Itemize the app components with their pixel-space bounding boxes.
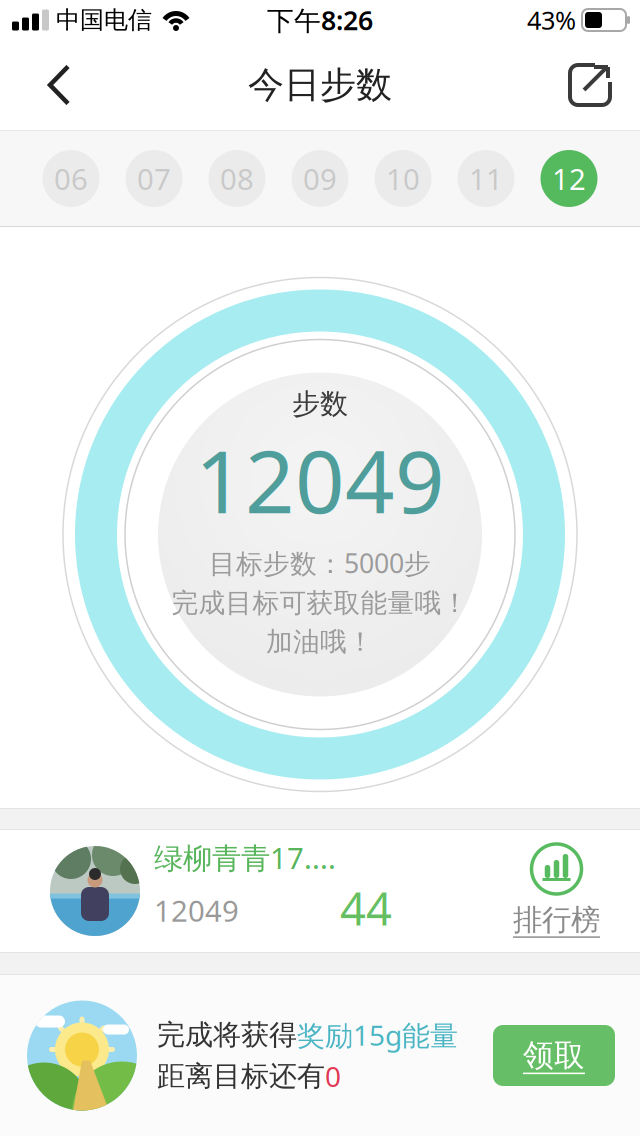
button[interactable]: 09 [291,150,348,207]
staticText: 绿柳青青17.... [154,838,336,877]
staticText: 44 [340,878,392,938]
button[interactable]: Back [0,44,68,125]
staticText: 目标步数：5000步 [209,545,431,581]
staticText: 完成目标可获取能量哦！ [171,587,468,619]
staticText: 12 [552,159,586,198]
button[interactable]: Share [568,47,640,123]
button[interactable]: 12 [540,150,597,207]
staticText: 中国电信 [56,5,152,35]
button[interactable]: 08 [208,150,265,207]
button[interactable]: 排行榜 [513,844,640,938]
staticText: 今日步数 [248,63,392,107]
staticText: 完成将获得 [157,1018,297,1052]
staticText: 下午8:26 [267,2,373,38]
staticText: 加油哦！ [266,625,374,658]
staticText: 10 [386,159,420,198]
staticText: 0 [325,1057,341,1095]
staticText: 12049 [154,891,239,930]
staticText: 06 [54,159,88,198]
staticText: 11 [469,159,503,198]
button[interactable]: 领取 [493,1025,615,1086]
staticText: 43% [527,3,576,37]
button[interactable]: 06 [42,150,99,207]
staticText: 排行榜 [513,902,600,938]
staticText: 领取 [523,1037,585,1074]
staticText: 08 [220,159,254,198]
staticText: 09 [303,159,337,198]
button[interactable]: 07 [125,150,182,207]
staticText: 距离目标还有 [157,1059,325,1093]
staticText: 奖励15g能量 [297,1016,458,1053]
staticText: 步数 [292,387,348,421]
button[interactable]: 11 [457,150,514,207]
staticText: 12049 [195,422,445,537]
staticText: 07 [137,159,171,198]
button[interactable]: 10 [374,150,431,207]
